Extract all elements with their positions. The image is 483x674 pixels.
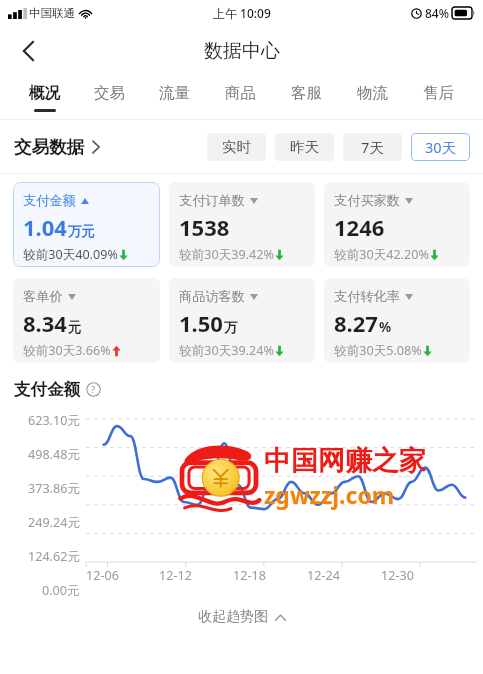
staticText: zgwzzj.com — [264, 479, 395, 510]
button[interactable]: 支付买家数 — [324, 182, 470, 267]
staticText: 较前30天3.66% — [23, 342, 111, 359]
staticText: 12-12 — [159, 567, 192, 584]
staticText: 8.34 — [23, 308, 67, 338]
button[interactable]: 收起趋势图 — [198, 608, 286, 626]
staticText: 30天 — [425, 137, 457, 157]
staticText: 昨天 — [290, 138, 319, 156]
button[interactable]: 客服 — [273, 75, 339, 119]
staticText: 较前30天40.09% — [23, 246, 118, 263]
button[interactable]: 交易 — [77, 75, 142, 119]
staticText: 概况 — [29, 83, 60, 103]
staticText: 较前30天5.08% — [334, 342, 422, 359]
staticText: 249.24元 — [28, 514, 80, 531]
staticText: 373.86元 — [28, 480, 80, 497]
staticText: 1246 — [334, 212, 385, 242]
staticText: 万元 — [68, 223, 95, 240]
staticText: 较前30天39.24% — [179, 342, 274, 359]
button[interactable]: 支付订单数 — [169, 182, 315, 267]
staticText: 12-18 — [233, 567, 266, 584]
staticText: 12-30 — [381, 567, 414, 584]
staticText: 中国网赚之家 — [264, 444, 426, 478]
staticText: 124.62元 — [28, 548, 80, 565]
button[interactable]: 概况 — [12, 75, 77, 119]
staticText: % — [379, 318, 392, 336]
staticText: 商品访客数 — [179, 288, 245, 305]
staticText: 物流 — [357, 83, 388, 103]
staticText: 较前30天42.20% — [334, 246, 429, 263]
staticText: 1538 — [179, 212, 230, 242]
staticText: 1.04 — [23, 212, 67, 242]
button[interactable]: 客单价 — [13, 278, 160, 363]
staticText: 元 — [68, 319, 82, 336]
staticText: 498.48元 — [28, 446, 80, 463]
staticText: 中国联通 — [29, 6, 75, 20]
button[interactable]: 商品 — [207, 75, 273, 119]
button[interactable]: 7天 — [343, 133, 402, 161]
button[interactable]: 昨天 — [275, 133, 334, 161]
staticText: 上午 10:09 — [213, 5, 271, 21]
button[interactable]: 支付转化率 — [324, 278, 470, 363]
staticText: 1.50 — [179, 308, 223, 338]
staticText: ? — [91, 383, 96, 396]
staticText: 客单价 — [23, 288, 63, 305]
staticText: 客服 — [291, 83, 322, 103]
staticText: 7天 — [361, 137, 384, 157]
button[interactable]: 返回 — [6, 29, 50, 73]
staticText: 商品 — [225, 83, 256, 103]
staticText: 交易数据 — [14, 136, 84, 158]
staticText: 12-24 — [307, 567, 340, 584]
button[interactable]: 商品访客数 — [169, 278, 315, 363]
staticText: 数据中心 — [204, 39, 280, 63]
button[interactable]: 流量 — [142, 75, 207, 119]
staticText: 84% — [425, 5, 449, 21]
staticText: 支付买家数 — [334, 192, 400, 209]
staticText: 万 — [224, 319, 238, 336]
button[interactable]: 30天 — [411, 133, 470, 161]
staticText: 0.00元 — [42, 582, 80, 599]
staticText: 流量 — [159, 83, 190, 103]
staticText: 623.10元 — [28, 412, 80, 429]
button[interactable]: 实时 — [207, 133, 266, 161]
staticText: 8.27 — [334, 308, 378, 338]
staticText: 支付金额 — [23, 192, 76, 209]
staticText: 支付订单数 — [179, 192, 245, 209]
staticText: 实时 — [222, 138, 251, 156]
staticText: 收起趋势图 — [198, 608, 268, 626]
button[interactable]: 物流 — [339, 75, 405, 119]
button[interactable]: 交易数据 — [14, 136, 100, 158]
staticText: 12-06 — [86, 567, 119, 584]
staticText: 支付转化率 — [334, 288, 400, 305]
button[interactable]: 支付金额 — [13, 182, 160, 267]
staticText: 交易 — [94, 83, 125, 103]
staticText: 支付金额 — [14, 379, 80, 400]
button[interactable]: 说明 — [86, 382, 101, 397]
button[interactable]: 售后 — [405, 75, 471, 119]
staticText: 较前30天39.42% — [179, 246, 274, 263]
staticText: 售后 — [423, 83, 454, 103]
